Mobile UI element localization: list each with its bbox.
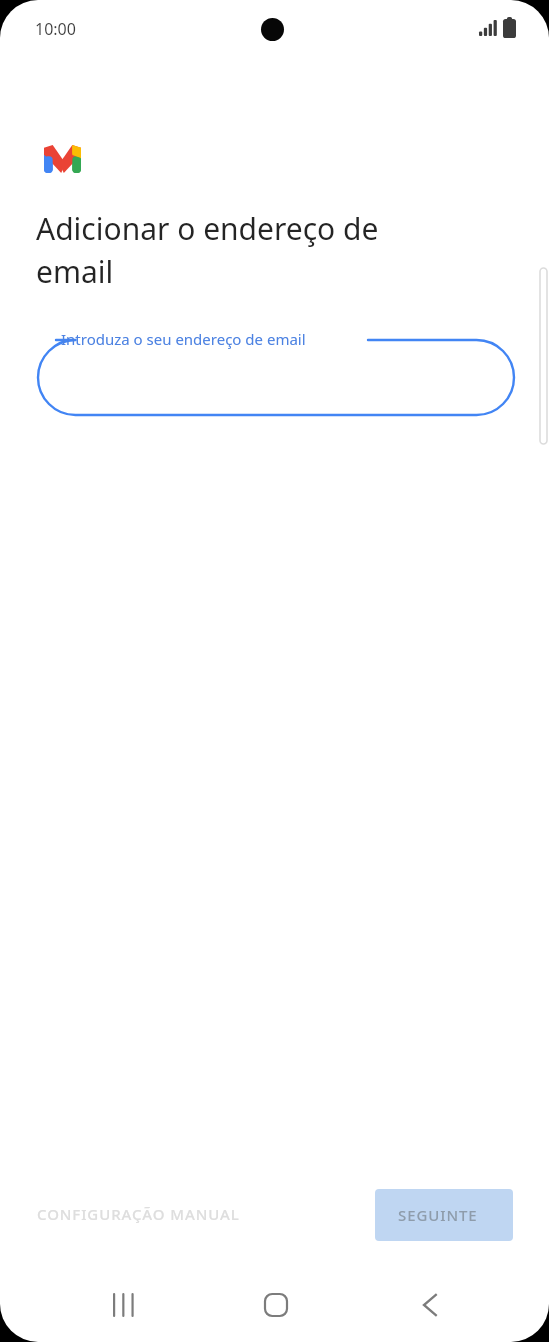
- button[interactable]: Home: [244, 1275, 308, 1335]
- button[interactable]: SEGUINTE: [375, 1189, 513, 1241]
- button[interactable]: [37, 340, 514, 417]
- staticText: 10:00: [35, 18, 76, 40]
- button[interactable]: Recent apps: [92, 1275, 156, 1335]
- staticText: CONFIGURAÇÃO MANUAL: [37, 1204, 240, 1224]
- button[interactable]: Back: [398, 1275, 462, 1335]
- button[interactable]: CONFIGURAÇÃO MANUAL: [24, 1192, 302, 1238]
- staticText: Adicionar o endereço de email: [36, 208, 379, 292]
- staticText: SEGUINTE: [398, 1205, 478, 1225]
- staticText: Introduza o seu endereço de email: [61, 329, 306, 349]
